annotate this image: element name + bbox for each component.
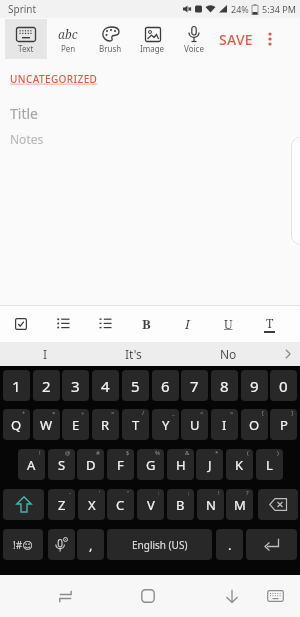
button[interactable]: 8	[211, 370, 238, 401]
button[interactable]: It's	[117, 342, 149, 366]
staticText: No	[220, 346, 237, 362]
staticText: E	[72, 416, 80, 434]
button[interactable]: 5	[122, 370, 149, 401]
button[interactable]: M	[226, 489, 253, 520]
staticText: $	[126, 449, 130, 457]
staticText: K	[235, 456, 244, 474]
staticText: Brush	[99, 43, 122, 54]
button[interactable]: 6	[152, 370, 179, 401]
button[interactable]: abc	[47, 19, 89, 59]
button[interactable]: I	[211, 409, 238, 440]
button[interactable]: T	[122, 409, 149, 440]
staticText: P	[280, 416, 288, 434]
button[interactable]	[3, 489, 44, 520]
button[interactable]: No	[214, 342, 242, 366]
staticText: 5:34 PM	[262, 3, 296, 15]
button[interactable]: B	[167, 489, 194, 520]
staticText: +	[22, 409, 26, 417]
button[interactable]	[131, 579, 165, 613]
button[interactable]	[260, 581, 290, 611]
button[interactable]: 3	[62, 370, 89, 401]
button[interactable]: J	[196, 449, 223, 480]
button[interactable]: 7	[181, 370, 208, 401]
button[interactable]: U	[208, 305, 249, 342]
button[interactable]: S	[48, 449, 75, 480]
staticText: #	[96, 449, 100, 457]
button[interactable]: Z	[48, 489, 75, 520]
button[interactable]: W	[33, 409, 60, 440]
button[interactable]: 2	[33, 370, 60, 401]
button[interactable]	[84, 305, 126, 342]
button[interactable]: K	[226, 449, 253, 480]
staticText: U	[190, 416, 200, 434]
button[interactable]: Image	[131, 19, 173, 59]
button[interactable]: Brush	[89, 19, 131, 59]
button[interactable]: E	[62, 409, 89, 440]
button[interactable]: Text	[5, 19, 47, 59]
button[interactable]	[0, 305, 42, 342]
button[interactable]: I	[35, 342, 55, 366]
button[interactable]: X	[78, 489, 105, 520]
button[interactable]: B	[126, 305, 167, 342]
button[interactable]	[257, 19, 283, 59]
button[interactable]: Y	[152, 409, 179, 440]
staticText: ÷	[81, 409, 85, 417]
button[interactable]: SAVE	[215, 30, 257, 49]
button[interactable]: D	[77, 449, 104, 480]
button[interactable]: 0	[270, 370, 297, 401]
button[interactable]	[48, 529, 75, 560]
button[interactable]: ,	[77, 529, 104, 560]
button[interactable]: P	[270, 409, 297, 440]
button[interactable]: English (US)	[107, 529, 212, 560]
staticText: 1	[12, 376, 21, 396]
button[interactable]: 9	[241, 370, 268, 401]
staticText: <	[200, 409, 204, 417]
staticText: ×	[52, 409, 56, 417]
button[interactable]: Q	[3, 409, 30, 440]
staticText: :	[158, 489, 160, 497]
staticText: J	[208, 456, 212, 474]
staticText: English (US)	[132, 538, 188, 552]
staticText: .	[228, 536, 232, 554]
staticText: UNCATEGORIZED	[10, 72, 98, 86]
button[interactable]: F	[107, 449, 134, 480]
staticText: F	[117, 456, 124, 474]
button[interactable]: N	[197, 489, 224, 520]
staticText: [	[262, 409, 264, 417]
button[interactable]: C	[107, 489, 134, 520]
staticText: "	[127, 489, 130, 497]
button[interactable]	[215, 579, 249, 613]
button[interactable]	[42, 305, 84, 342]
button[interactable]: I	[167, 305, 208, 342]
button[interactable]: T	[249, 305, 290, 342]
button[interactable]: 4	[92, 370, 119, 401]
button[interactable]	[246, 529, 297, 560]
staticText: V	[147, 496, 155, 514]
button[interactable]: V	[137, 489, 164, 520]
button[interactable]: .	[216, 529, 243, 560]
button[interactable]: U	[181, 409, 208, 440]
staticText: (	[247, 449, 249, 457]
staticText: !	[39, 449, 41, 457]
staticText: B	[142, 315, 151, 333]
staticText: M	[234, 496, 246, 514]
button[interactable]: Voice	[173, 19, 215, 59]
staticText: ]	[291, 409, 293, 417]
button[interactable]: !#☺	[3, 529, 43, 560]
button[interactable]	[48, 579, 82, 613]
staticText: D	[86, 456, 96, 474]
staticText: 5	[131, 376, 140, 396]
button[interactable]: H	[167, 449, 194, 480]
button[interactable]: L	[256, 449, 283, 480]
staticText: I	[185, 315, 190, 333]
staticText: 6	[161, 376, 170, 396]
button[interactable]	[258, 489, 298, 520]
staticText: C	[116, 496, 125, 514]
button[interactable]: O	[241, 409, 268, 440]
button[interactable]: R	[92, 409, 119, 440]
button[interactable]: A	[18, 449, 45, 480]
button[interactable]: 1	[3, 370, 30, 401]
button[interactable]	[278, 342, 298, 366]
staticText: Sprint	[8, 2, 37, 16]
button[interactable]: G	[137, 449, 164, 480]
